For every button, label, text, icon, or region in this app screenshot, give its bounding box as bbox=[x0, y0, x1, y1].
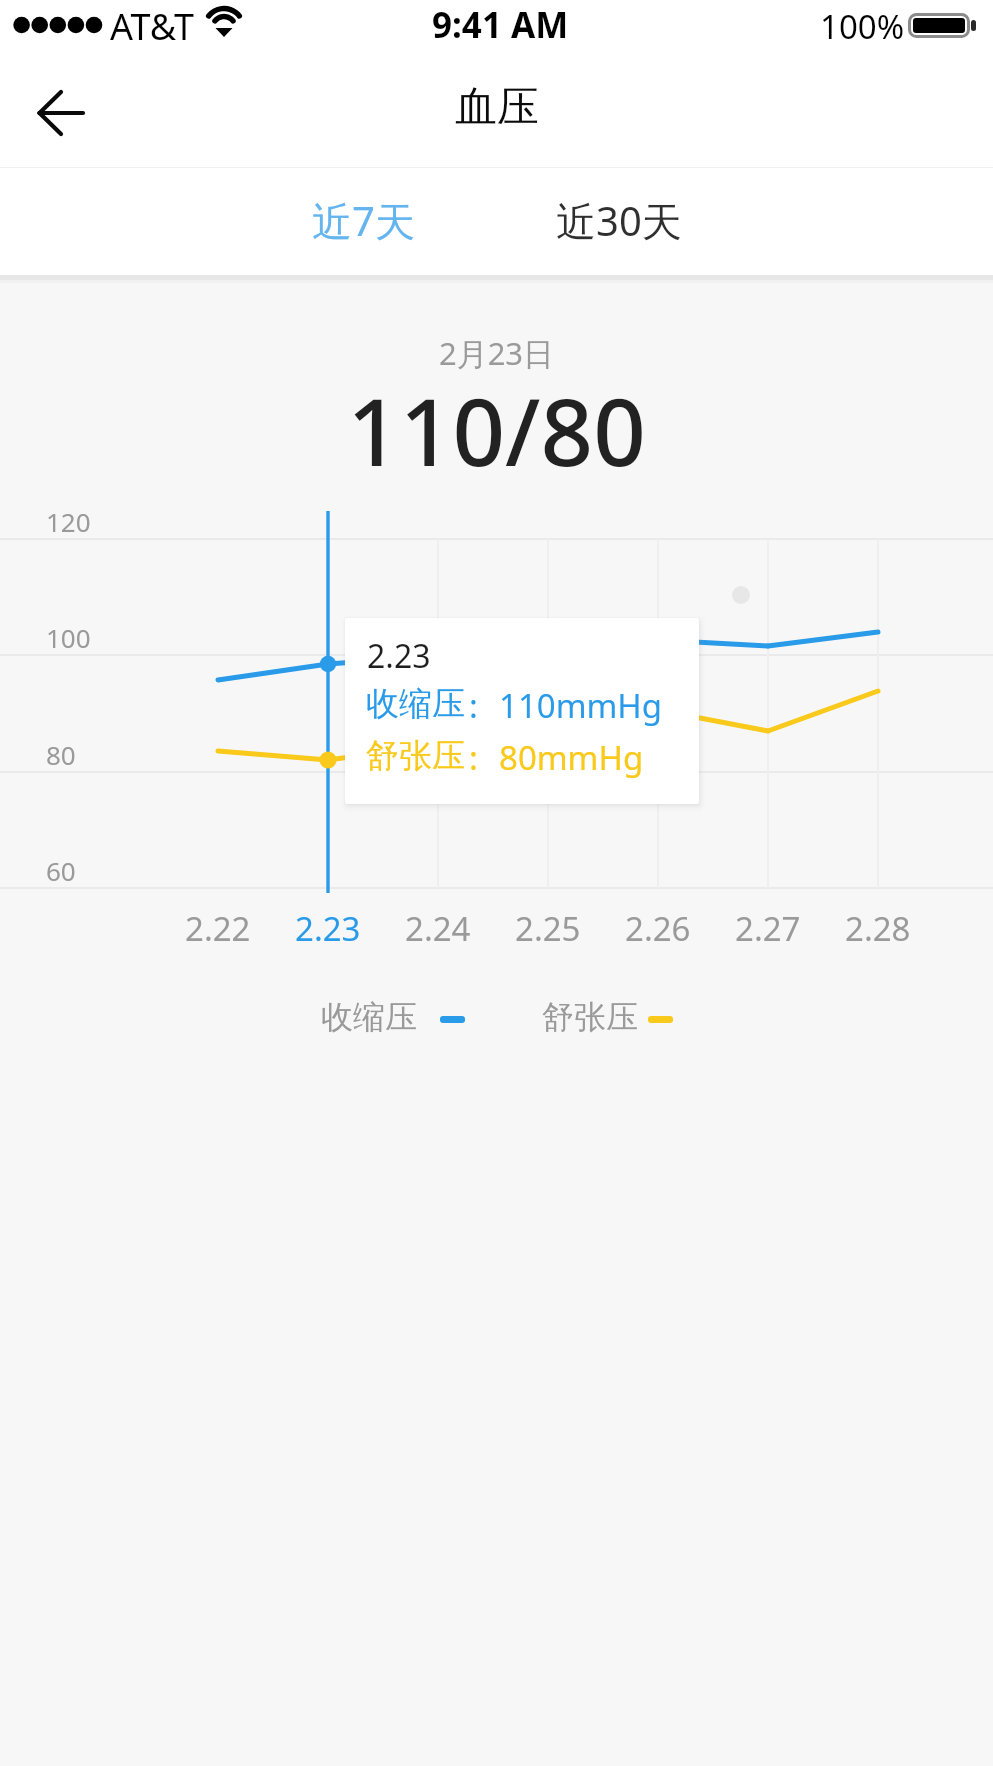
staticText: 收缩压 bbox=[366, 683, 465, 725]
staticText: 2.26 bbox=[625, 906, 691, 951]
staticText: : bbox=[469, 683, 478, 728]
staticText: 2.23 bbox=[367, 634, 431, 678]
staticText: 60 bbox=[46, 853, 76, 888]
staticText: 近7天 bbox=[312, 193, 415, 248]
staticText: 2.27 bbox=[735, 906, 801, 951]
button[interactable]: 近7天 bbox=[243, 168, 483, 272]
staticText: 舒张压 bbox=[542, 997, 638, 1037]
staticText: 100% bbox=[820, 4, 905, 49]
staticText: 80 bbox=[46, 737, 76, 772]
staticText: 110/80 bbox=[0, 368, 993, 493]
staticText: 2.28 bbox=[845, 906, 911, 951]
staticText: 血压 bbox=[455, 81, 539, 134]
button[interactable]: 近30天 bbox=[499, 168, 739, 272]
staticText: 近30天 bbox=[556, 193, 682, 248]
staticText: 2.25 bbox=[515, 906, 581, 951]
staticText: 2.23 bbox=[295, 906, 361, 951]
staticText: 收缩压 bbox=[321, 997, 417, 1037]
staticText: 120 bbox=[46, 504, 91, 539]
staticText: 110mmHg bbox=[499, 683, 663, 728]
staticText: 80mmHg bbox=[499, 735, 644, 780]
staticText: 2.22 bbox=[185, 906, 251, 951]
staticText: 100 bbox=[46, 620, 91, 655]
staticText: : bbox=[469, 735, 478, 780]
staticText: 2月23日 bbox=[0, 332, 993, 374]
staticText: AT&T bbox=[110, 2, 194, 51]
staticText: 舒张压 bbox=[366, 735, 465, 777]
staticText: 9:41 AM bbox=[432, 1, 569, 49]
staticText: 2.24 bbox=[405, 906, 471, 951]
button[interactable]: Back bbox=[6, 63, 116, 163]
